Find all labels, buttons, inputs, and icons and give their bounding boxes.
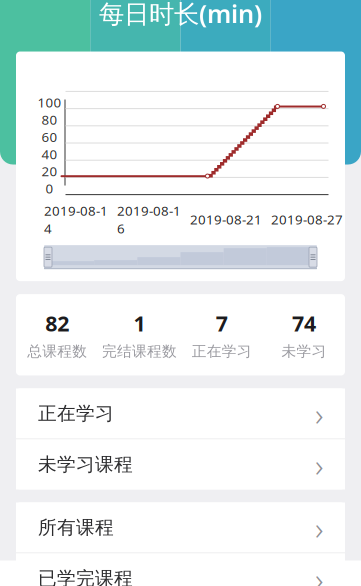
staticText: 0 bbox=[45, 179, 53, 197]
button[interactable]: 已学完课程 bbox=[16, 553, 345, 586]
staticText: 正在学习 bbox=[192, 342, 252, 360]
staticText: 总课程数 bbox=[27, 342, 87, 360]
staticText: 2019-08-16 bbox=[117, 202, 181, 237]
staticText: 完结课程数 bbox=[102, 342, 177, 360]
button[interactable]: 正在学习 bbox=[16, 388, 345, 438]
button[interactable]: 所有课程 bbox=[16, 502, 345, 552]
staticText: › bbox=[315, 557, 323, 586]
staticText: 20 bbox=[41, 162, 57, 180]
staticText: 所有课程 bbox=[38, 516, 114, 539]
staticText: 82 bbox=[45, 309, 69, 337]
staticText: 80 bbox=[41, 111, 57, 128]
staticText: › bbox=[315, 392, 323, 435]
staticText: 2019-08-21 bbox=[190, 211, 262, 228]
staticText: 2019-08-14 bbox=[44, 202, 108, 237]
staticText: 74 bbox=[292, 309, 316, 337]
staticText: 1 bbox=[133, 309, 145, 337]
staticText: 每日时长(min) bbox=[99, 0, 262, 30]
staticText: 7 bbox=[216, 309, 228, 337]
staticText: › bbox=[315, 443, 323, 486]
staticText: 正在学习 bbox=[38, 402, 114, 425]
staticText: 40 bbox=[41, 145, 57, 163]
staticText: 未学习课程 bbox=[38, 453, 133, 476]
staticText: › bbox=[315, 506, 323, 549]
staticText: 未学习 bbox=[281, 342, 326, 360]
staticText: 已学完课程 bbox=[38, 567, 133, 586]
staticText: 100 bbox=[37, 93, 61, 111]
button[interactable]: 未学习课程 bbox=[16, 439, 345, 489]
staticText: 2019-08-27 bbox=[271, 211, 343, 228]
staticText: 60 bbox=[41, 128, 57, 146]
